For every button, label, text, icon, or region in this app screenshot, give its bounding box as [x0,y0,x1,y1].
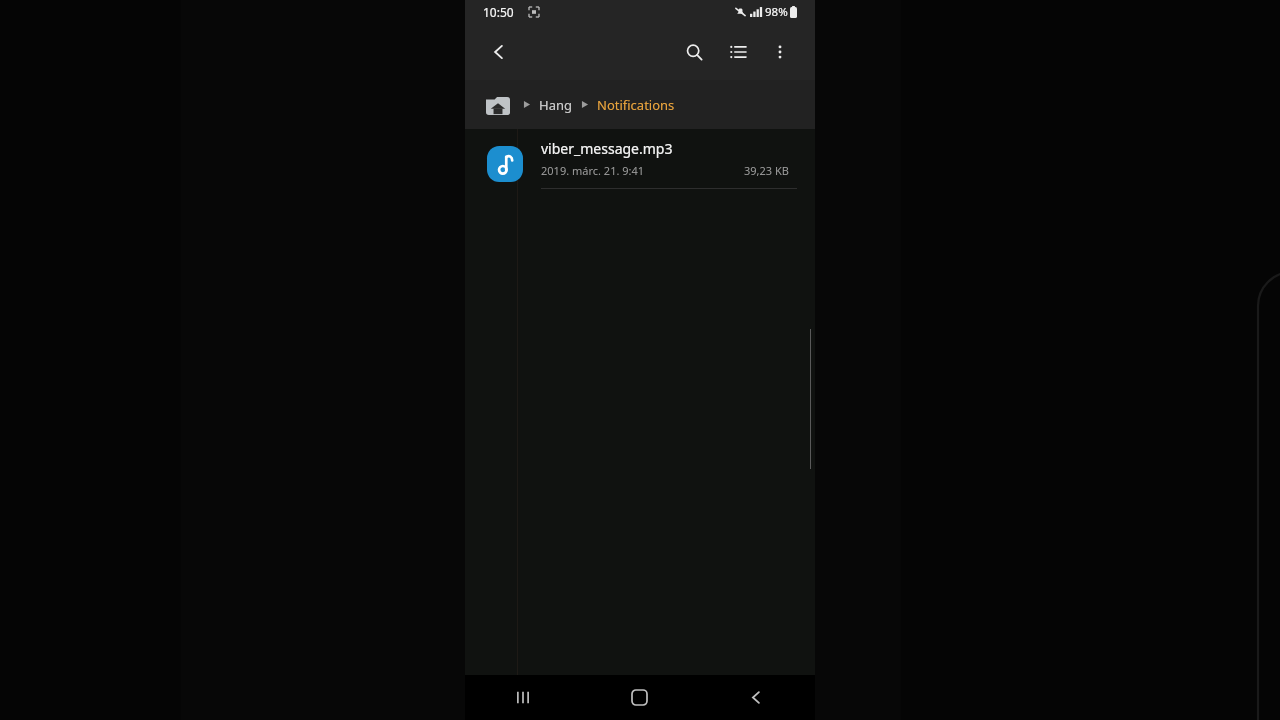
staticText: 2019. márc. 21. 9:41 [541,163,645,178]
button[interactable]: Home folder [485,92,511,118]
button[interactable]: viber_message.mp3 [465,129,815,199]
staticText: viber_message.mp3 [541,139,673,158]
staticText: Notifications [597,96,675,114]
staticText: Hang [539,96,572,114]
button[interactable]: More options [761,33,799,71]
button[interactable]: Search [675,33,713,71]
staticText: 10:50 [483,4,514,20]
staticText: 98% [765,4,788,20]
button[interactable]: Back [698,675,815,720]
button[interactable]: Back [479,32,519,72]
button[interactable]: Home [581,675,698,720]
staticText: 39,23 KB [744,163,789,178]
button[interactable]: Hang [539,96,572,114]
button[interactable]: View as list [719,33,757,71]
button[interactable]: Recents [465,675,581,720]
button[interactable]: Notifications [597,96,675,114]
